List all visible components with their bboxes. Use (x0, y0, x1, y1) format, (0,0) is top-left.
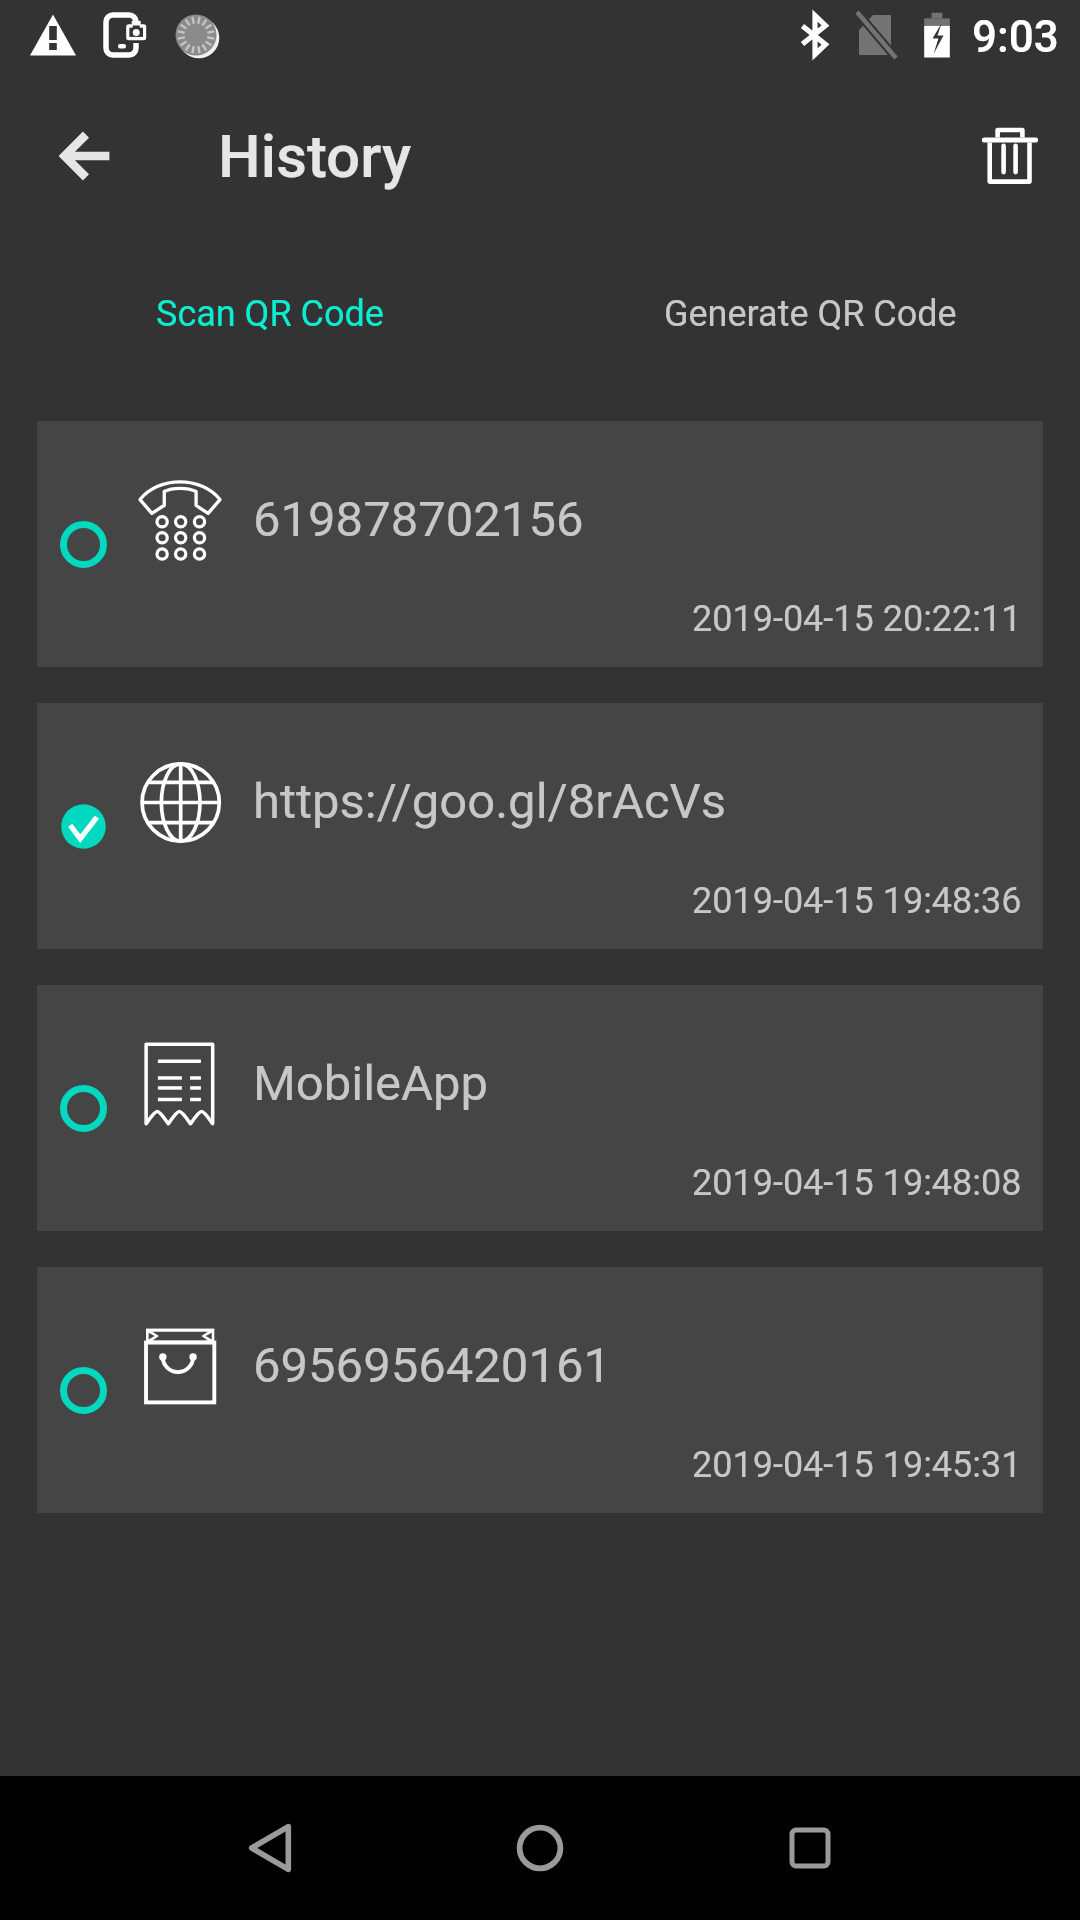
staticText: 2019-04-15 19:48:36 (692, 880, 1022, 922)
button[interactable]: Selected (37, 703, 1043, 949)
staticText: Scan QR Code (156, 293, 384, 335)
staticText: 9:03 (972, 11, 1059, 63)
button[interactable]: Select item (42, 1067, 125, 1150)
button[interactable]: Recent apps (750, 1788, 870, 1908)
staticText: MobileApp (253, 1055, 489, 1112)
button[interactable]: Select item (42, 503, 125, 586)
button[interactable]: Back (38, 108, 134, 204)
button[interactable]: Scan QR Code (0, 239, 540, 384)
button[interactable]: Back (210, 1788, 330, 1908)
button[interactable]: Selected (42, 785, 125, 868)
staticText: 619878702156 (253, 491, 584, 548)
button[interactable]: Select item (37, 421, 1043, 667)
staticText: 6956956420161 (253, 1337, 612, 1394)
button[interactable]: Home (480, 1788, 600, 1908)
staticText: History (218, 121, 412, 191)
button[interactable]: Generate QR Code (540, 239, 1080, 384)
staticText: 2019-04-15 19:48:08 (692, 1162, 1022, 1204)
button[interactable]: Select item (42, 1349, 125, 1432)
staticText: 2019-04-15 20:22:11 (692, 598, 1022, 640)
staticText: https://goo.gl/8rAcVs (253, 773, 727, 830)
staticText: 2019-04-15 19:45:31 (692, 1444, 1022, 1486)
staticText: Generate QR Code (664, 293, 957, 335)
button[interactable]: Select item (37, 985, 1043, 1231)
button[interactable]: Select item (37, 1267, 1043, 1513)
button[interactable]: Delete history (962, 108, 1058, 204)
